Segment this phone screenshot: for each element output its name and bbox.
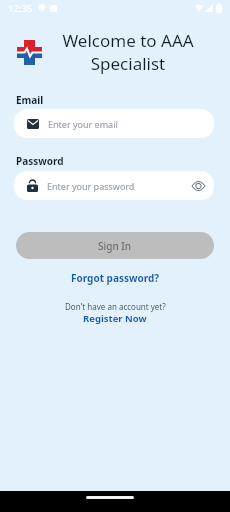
staticText: 12:35: [8, 2, 33, 15]
staticText: Welcome to AAA Specialist: [62, 29, 194, 75]
button[interactable]: Enter your email: [14, 109, 214, 138]
button[interactable]: Register Now: [83, 312, 147, 325]
staticText: Password: [16, 154, 64, 168]
button[interactable]: Enter your password: [14, 171, 214, 200]
button[interactable]: Forgot password?: [71, 271, 160, 285]
staticText: Email: [16, 93, 44, 107]
staticText: Sign In: [98, 239, 132, 253]
button[interactable]: Sign In: [16, 232, 214, 259]
staticText: Enter your password: [47, 180, 192, 192]
staticText: Don't have an account yet?: [65, 301, 166, 312]
staticText: Enter your email: [48, 118, 118, 130]
button[interactable]: [192, 181, 205, 191]
